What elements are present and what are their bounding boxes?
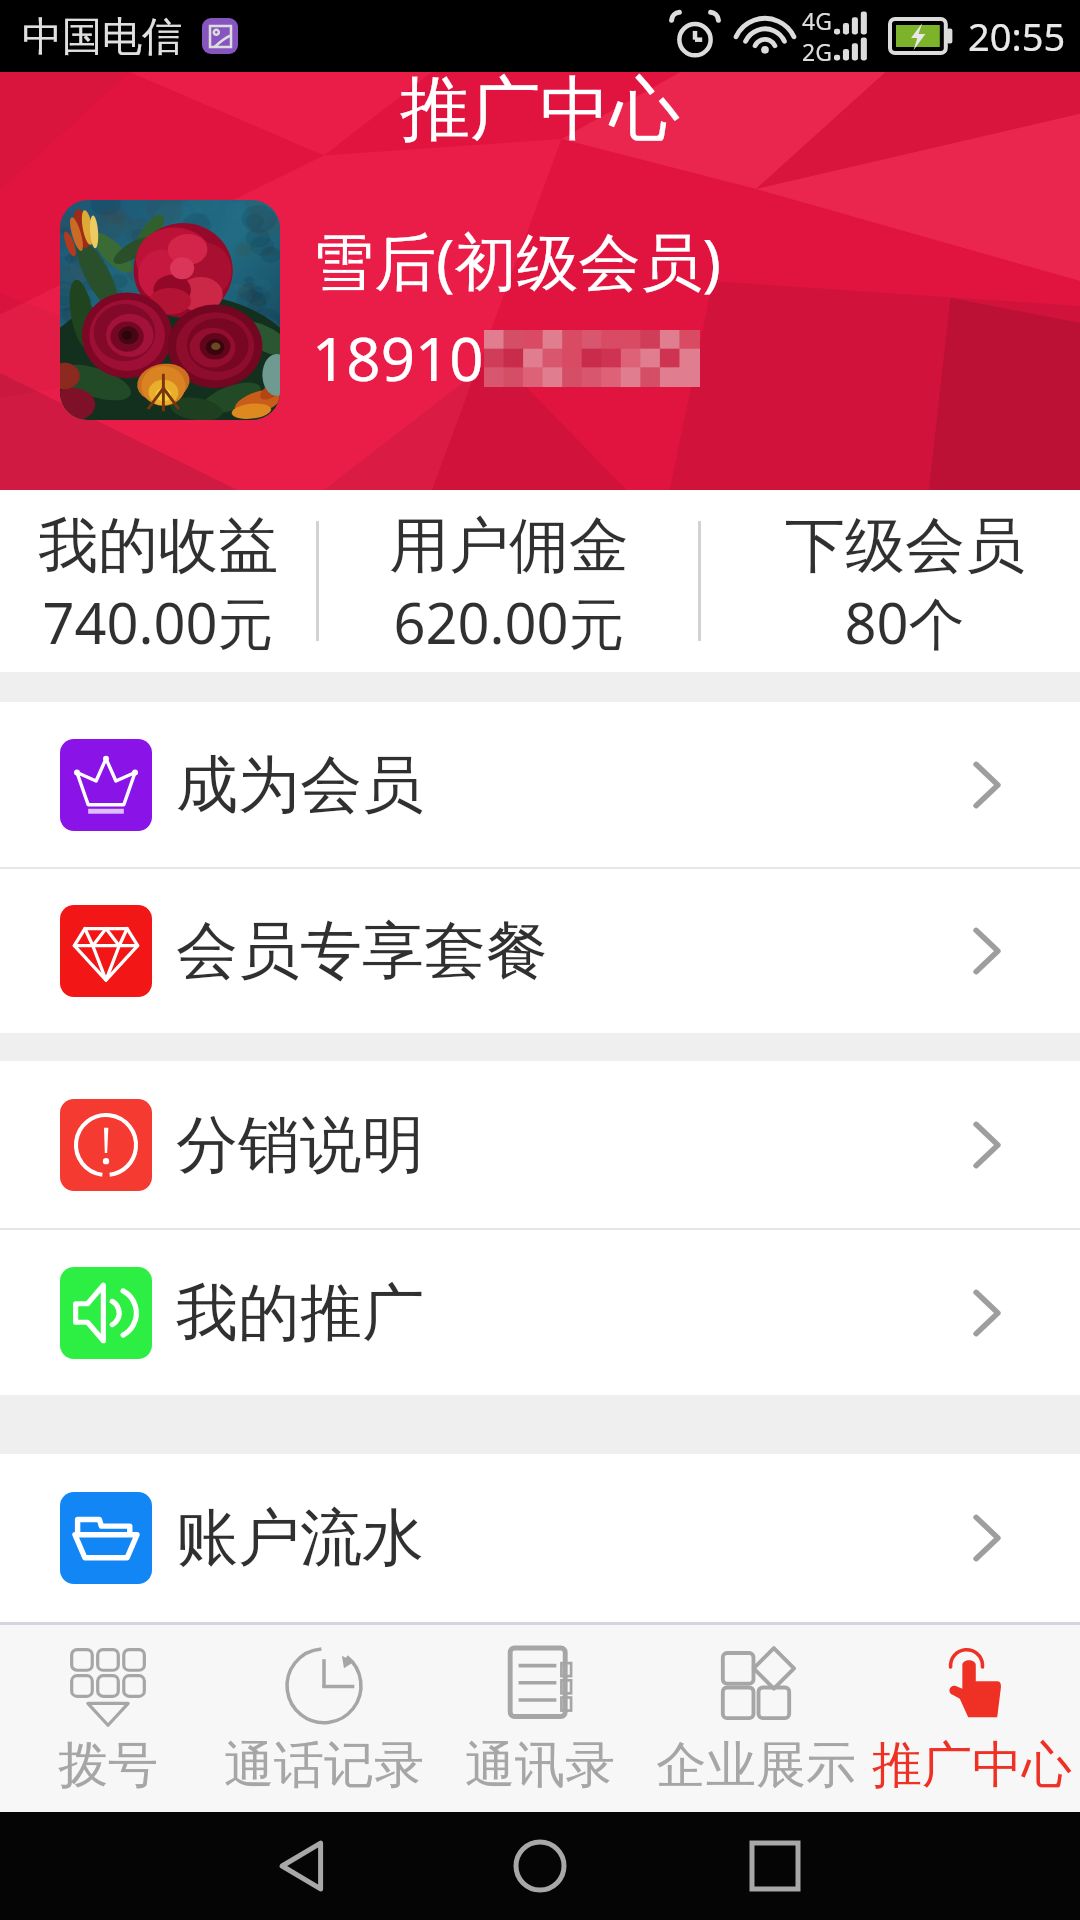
button[interactable]: 成为会员 (0, 702, 1080, 867)
staticText: 用户佣金 (389, 508, 629, 584)
staticText: 企业展示 (656, 1734, 856, 1797)
button[interactable]: 我的推广 (0, 1230, 1080, 1395)
staticText: 拨号 (58, 1734, 158, 1797)
button[interactable]: Back (255, 1816, 355, 1916)
staticText: 雪后(初级会员) (312, 218, 722, 303)
button[interactable]: Home (490, 1816, 590, 1916)
staticText: 740.00元 (42, 584, 274, 660)
button[interactable]: 会员专享套餐 (0, 869, 1080, 1033)
staticText: 下级会员 (785, 508, 1025, 584)
staticText: 成为会员 (176, 746, 424, 824)
staticText: 中国电信 (22, 11, 182, 61)
staticText: 会员专享套餐 (176, 912, 548, 990)
button[interactable]: Recents (725, 1816, 825, 1916)
staticText: 推广中心 (872, 1734, 1072, 1797)
button[interactable]: 推广中心 (864, 1625, 1080, 1812)
staticText: 80个 (844, 584, 965, 660)
staticText: 我的收益 (38, 508, 278, 584)
staticText: 通话记录 (224, 1734, 424, 1797)
staticText: 4G (802, 5, 832, 36)
button[interactable]: 通话记录 (216, 1625, 432, 1812)
button[interactable]: 分销说明 (0, 1061, 1080, 1228)
button[interactable]: 我的收益 (0, 490, 316, 672)
staticText: 20:55 (968, 10, 1066, 62)
staticText: 18910 (312, 317, 484, 399)
button[interactable]: 账户流水 (0, 1454, 1080, 1621)
staticText: 分销说明 (176, 1106, 424, 1184)
staticText: 620.00元 (393, 584, 625, 660)
staticText: 推广中心 (400, 66, 680, 154)
button[interactable]: 拨号 (0, 1625, 216, 1812)
staticText: 账户流水 (176, 1499, 424, 1577)
button[interactable]: 企业展示 (648, 1625, 864, 1812)
button[interactable]: 用户佣金 (319, 490, 698, 672)
staticText: 通讯录 (465, 1734, 615, 1797)
button[interactable]: 下级会员 (701, 490, 1080, 672)
staticText: 我的推广 (176, 1274, 424, 1352)
button[interactable]: 通讯录 (432, 1625, 648, 1812)
staticText: 2G (802, 36, 832, 67)
